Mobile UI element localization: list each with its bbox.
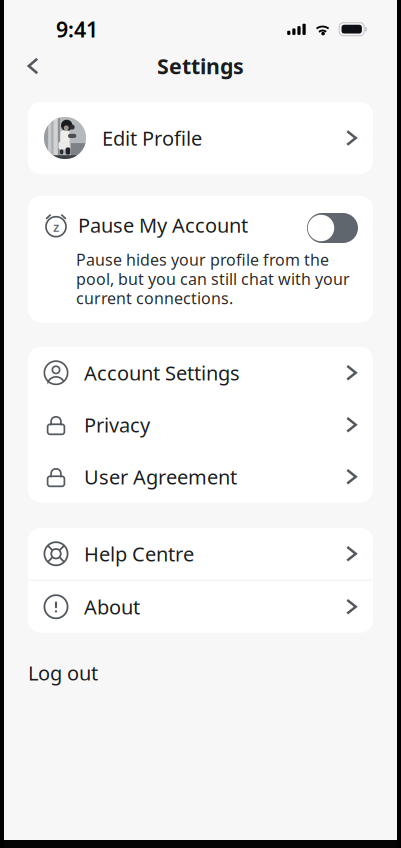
staticText: Account Settings (84, 359, 240, 386)
button[interactable]: Help Centre (28, 528, 373, 580)
button[interactable]: About (28, 581, 373, 633)
button[interactable]: Pause My Account (307, 210, 358, 240)
button[interactable]: Back (15, 48, 51, 84)
staticText: Pause My Account (78, 212, 248, 238)
staticText: Pause hides your profile from the pool, … (76, 249, 350, 309)
button[interactable]: Account Settings (28, 347, 373, 399)
staticText: About (84, 593, 140, 620)
staticText: Settings (157, 52, 244, 80)
button[interactable]: Log out (28, 659, 373, 687)
staticText: Log out (28, 659, 98, 686)
staticText: Privacy (84, 411, 150, 438)
staticText: z (53, 218, 59, 235)
button[interactable]: User Agreement (28, 451, 373, 503)
staticText: Help Centre (84, 540, 194, 567)
staticText: User Agreement (84, 463, 237, 490)
button[interactable]: Privacy (28, 399, 373, 451)
button[interactable]: Edit Profile (28, 102, 373, 174)
staticText: 9:41 (56, 15, 98, 43)
staticText: Edit Profile (102, 125, 202, 151)
